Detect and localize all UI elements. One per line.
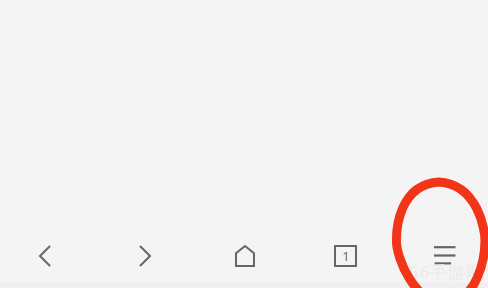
staticText: 1	[342, 247, 350, 265]
button[interactable]: Tabs	[313, 224, 377, 288]
button[interactable]: Back	[13, 224, 77, 288]
button[interactable]: Forward	[113, 224, 177, 288]
staticText: 56手游网	[409, 260, 484, 283]
button[interactable]: Home	[213, 224, 277, 288]
button[interactable]: Menu	[413, 224, 477, 288]
